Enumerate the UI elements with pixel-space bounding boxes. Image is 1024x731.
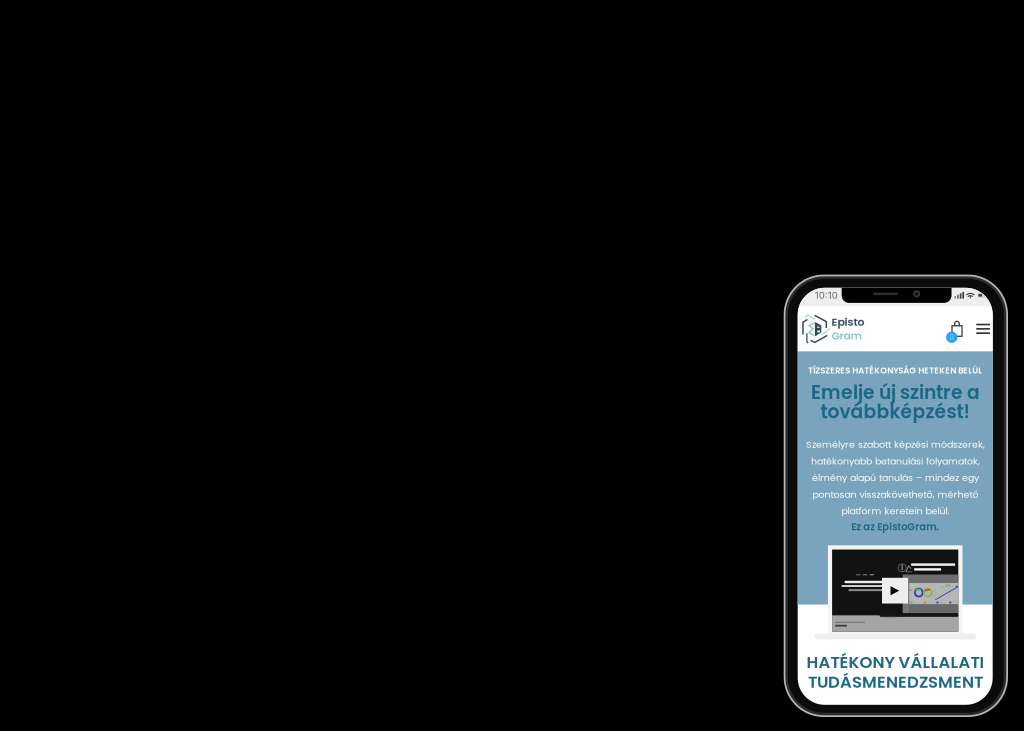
staticText: TÍZSZERES HATÉKONYSÁG HETEKEN BELÜL xyxy=(808,365,982,376)
staticText: Gram xyxy=(832,328,862,343)
staticText: 0 xyxy=(949,333,954,342)
staticText: Episto xyxy=(832,314,865,330)
staticText: Emelje új szintre a továbbképzést! xyxy=(811,379,980,425)
staticText: 10:10 xyxy=(815,289,838,301)
button[interactable]: Cart xyxy=(947,314,965,344)
button[interactable]: Menu xyxy=(965,319,990,339)
staticText: Személyre szabott képzési módszerek, hat… xyxy=(806,438,985,518)
staticText: HATÉKONY VÁLLALATI TUDÁSMENEDZSMENT xyxy=(806,651,984,693)
staticText: Ez az EpistoGram. xyxy=(851,520,939,534)
button[interactable]: Episto xyxy=(801,313,865,345)
